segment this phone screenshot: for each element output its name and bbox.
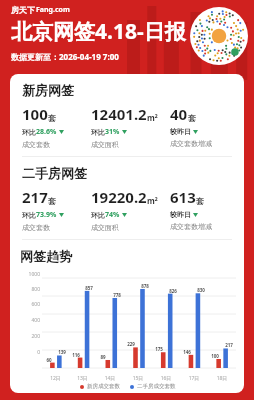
staticText: 878	[138, 283, 152, 289]
staticText: 较昨日	[170, 127, 191, 136]
staticText: 数据更新至：2026-04-19 7:00	[11, 51, 119, 62]
staticText: 新房成交套数	[87, 383, 120, 390]
button[interactable]: 新房成交套数	[80, 383, 120, 390]
staticText: 环比	[91, 128, 105, 137]
button[interactable]: 扫码二维码	[190, 7, 248, 65]
staticText: 826	[166, 288, 180, 294]
staticText: 778	[110, 292, 124, 298]
staticText: 217	[22, 187, 48, 207]
button[interactable]: 100	[22, 104, 91, 149]
staticText: 100	[22, 104, 48, 124]
staticText: 60	[42, 357, 56, 363]
button[interactable]: 217	[22, 187, 91, 232]
staticText: 139	[55, 349, 69, 355]
staticText: 89	[96, 354, 110, 360]
staticText: 套	[196, 196, 204, 206]
staticText: 146	[180, 349, 194, 355]
staticText: 较昨日	[170, 210, 191, 219]
button[interactable]: 40	[170, 104, 236, 148]
staticText: 12401.2	[91, 104, 147, 124]
staticText: 环比	[22, 211, 36, 220]
staticText: 31%	[105, 127, 120, 137]
staticText: 成交套数	[22, 140, 50, 149]
staticText: 成交套数	[22, 223, 50, 232]
staticText: 套	[188, 113, 196, 123]
staticText: 15日	[124, 375, 152, 382]
staticText: 19220.2	[91, 187, 147, 207]
staticText: 环比	[91, 211, 105, 220]
staticText: 成交套数增减	[170, 139, 212, 148]
staticText: m²	[147, 112, 158, 123]
staticText: 新房网签	[22, 82, 74, 98]
staticText: m²	[147, 195, 158, 206]
staticText: 二手房成交套数	[137, 383, 176, 390]
staticText: 830	[194, 287, 208, 293]
staticText: 857	[82, 285, 96, 291]
staticText: 16日	[152, 375, 180, 382]
staticText: 40	[170, 104, 188, 124]
staticText: 13日	[69, 375, 96, 382]
staticText: 17日	[180, 375, 208, 382]
staticText: 200	[20, 333, 40, 340]
staticText: 14日	[96, 375, 124, 382]
staticText: 116	[69, 352, 83, 358]
button[interactable]: 613	[170, 187, 236, 231]
staticText: 18日	[208, 375, 236, 382]
staticText: 613	[170, 187, 196, 207]
staticText: 北京网签4.18-日报	[11, 17, 186, 46]
staticText: 房天下	[11, 5, 35, 15]
staticText: 二手房网签	[22, 165, 87, 181]
button[interactable]: 12401.2	[91, 104, 170, 149]
staticText: 网签趋势	[20, 248, 72, 264]
staticText: 28.6%	[36, 127, 57, 137]
staticText: 成交套数增减	[170, 222, 212, 231]
staticText: 成交面积	[91, 223, 119, 232]
staticText: 400	[20, 317, 40, 324]
staticText: 1000	[20, 271, 40, 278]
staticText: Fang.com	[36, 5, 70, 15]
staticText: 成交面积	[91, 140, 119, 149]
staticText: 217	[222, 342, 236, 348]
staticText: 229	[124, 341, 138, 347]
staticText: 175	[152, 346, 166, 352]
staticText: 0	[20, 349, 40, 356]
staticText: 74%	[105, 210, 120, 220]
staticText: 800	[20, 286, 40, 293]
staticText: 12日	[42, 375, 69, 382]
staticText: 73.9%	[36, 210, 57, 220]
staticText: 套	[48, 196, 56, 206]
staticText: 环比	[22, 128, 36, 137]
button[interactable]: 二手房成交套数	[130, 383, 176, 390]
staticText: 600	[20, 301, 40, 308]
button[interactable]: 19220.2	[91, 187, 170, 232]
staticText: 100	[208, 353, 222, 359]
staticText: 套	[48, 113, 56, 123]
